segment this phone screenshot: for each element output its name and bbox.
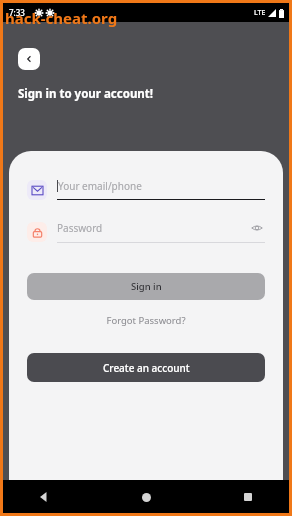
button[interactable]: Recents (237, 486, 259, 508)
staticText: Forgot Password? (106, 314, 186, 327)
button[interactable]: Sign in (27, 273, 265, 300)
staticText: LTE (254, 8, 266, 18)
button[interactable]: Back (33, 486, 55, 508)
button[interactable]: Forgot Password? (27, 314, 265, 327)
staticText: hack-cheat.org (5, 8, 118, 28)
button[interactable]: Home (135, 486, 157, 508)
staticText: Sign in (131, 280, 162, 293)
staticText: Password (57, 221, 103, 235)
button[interactable]: Back (18, 48, 40, 70)
staticText: Create an account (103, 361, 190, 375)
staticText: Your email/phone (58, 179, 142, 193)
staticText: Sign in to your account! (18, 86, 154, 102)
staticText: 7:33 (9, 7, 25, 18)
button[interactable]: Show password (249, 220, 265, 236)
button[interactable]: Create an account (27, 353, 265, 382)
